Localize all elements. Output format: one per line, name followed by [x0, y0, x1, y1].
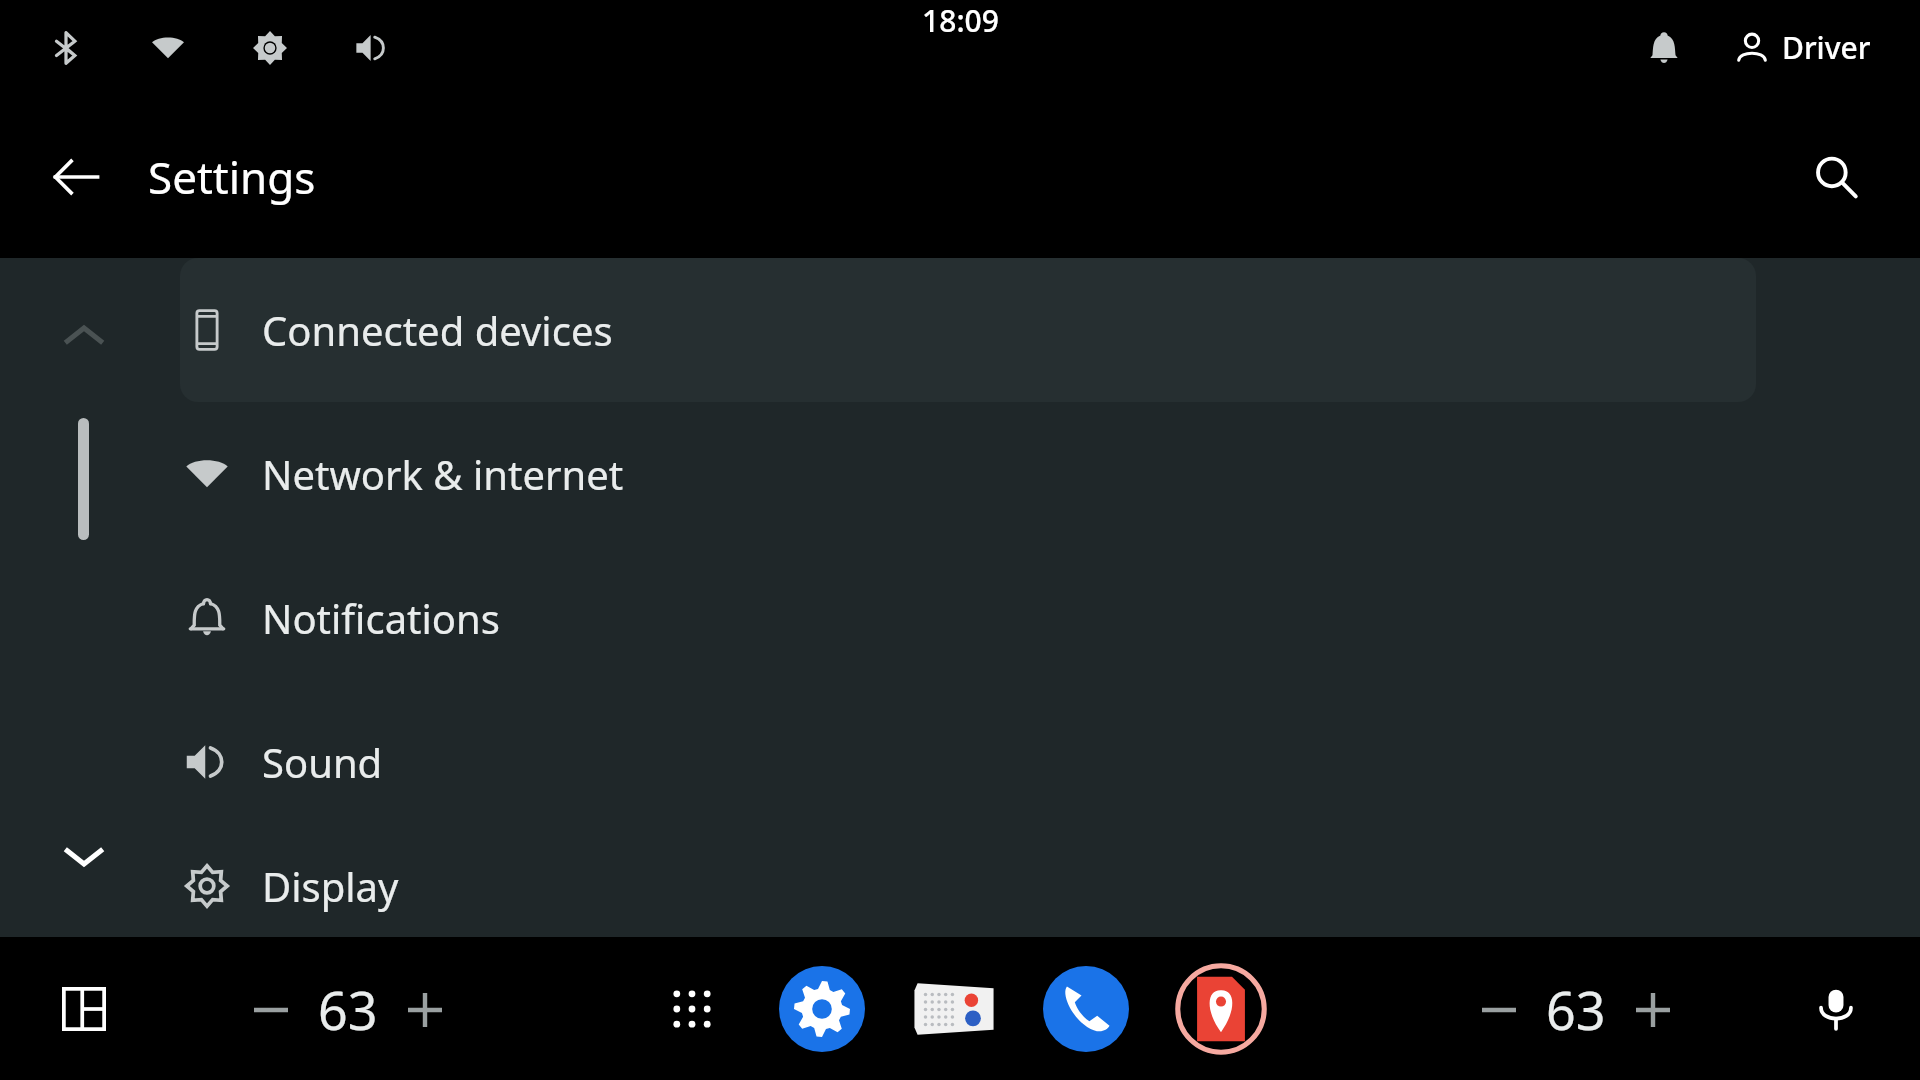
button[interactable]: Increase temperature: [1624, 981, 1682, 1039]
staticText: Sound: [262, 735, 383, 789]
staticText: Connected devices: [262, 303, 613, 357]
button[interactable]: Settings: [779, 966, 865, 1052]
button[interactable]: Wi-Fi: [142, 22, 194, 74]
button[interactable]: Scroll down: [54, 826, 114, 886]
button[interactable]: Brightness: [244, 22, 296, 74]
button[interactable]: Decrease temperature: [1470, 981, 1528, 1039]
staticText: 63: [1546, 974, 1606, 1045]
staticText: Settings: [148, 147, 316, 207]
staticText: Driver: [1782, 27, 1871, 68]
button[interactable]: Bluetooth: [40, 22, 92, 74]
button[interactable]: Radio: [911, 966, 997, 1052]
staticText: Notifications: [262, 591, 500, 645]
button[interactable]: Increase temperature: [396, 981, 454, 1039]
button[interactable]: Assistant: [1800, 973, 1872, 1045]
button[interactable]: Notifications: [180, 546, 1756, 690]
button[interactable]: Decrease temperature: [242, 981, 300, 1039]
button[interactable]: Dashboard: [48, 973, 120, 1045]
button[interactable]: Maps: [1175, 963, 1267, 1055]
button[interactable]: Volume: [346, 22, 398, 74]
button[interactable]: Display: [180, 834, 1756, 937]
button[interactable]: Connected devices: [180, 258, 1756, 402]
button[interactable]: All apps: [653, 970, 731, 1048]
staticText: 18:09: [922, 0, 999, 41]
button[interactable]: Driver: [1730, 19, 1875, 76]
button[interactable]: Network & internet: [180, 402, 1756, 546]
button[interactable]: Sound: [180, 690, 1756, 834]
staticText: 63: [318, 974, 378, 1045]
staticText: Display: [262, 859, 399, 913]
button[interactable]: Search: [1800, 141, 1872, 213]
staticText: Network & internet: [262, 447, 624, 501]
button[interactable]: Scroll up: [54, 306, 114, 366]
button[interactable]: Back: [40, 141, 112, 213]
button[interactable]: Notifications: [1636, 20, 1692, 76]
button[interactable]: Phone: [1043, 966, 1129, 1052]
